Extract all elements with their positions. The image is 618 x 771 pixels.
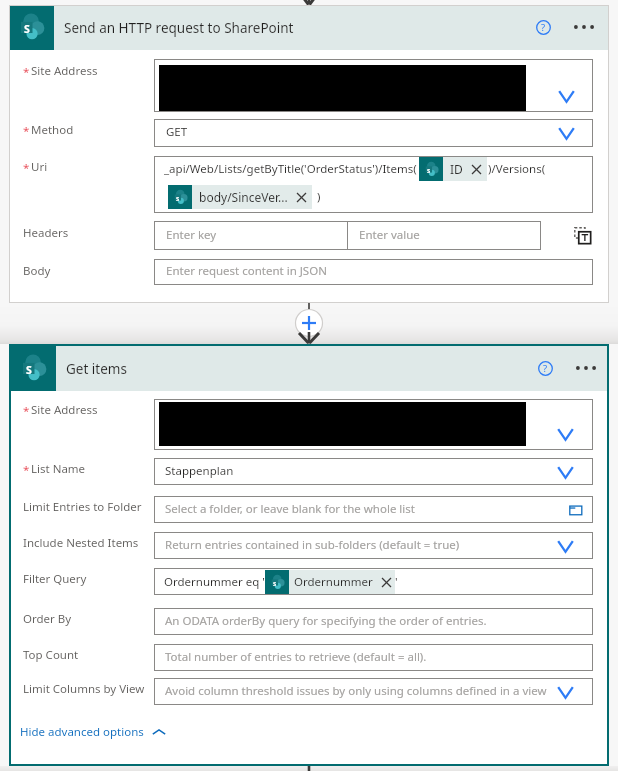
button[interactable]: Return entries contained in sub-folders … <box>154 532 593 559</box>
button[interactable]: GET <box>154 119 593 147</box>
staticText: ) <box>317 189 321 205</box>
button[interactable]: Total number of entries to retrieve (def… <box>154 644 593 671</box>
staticText: Filter Query <box>23 571 87 587</box>
staticText: S <box>24 22 30 36</box>
staticText: Enter value <box>359 227 420 243</box>
button[interactable]: Ordernummer eq ' <box>154 568 593 595</box>
button[interactable]: S <box>168 185 312 209</box>
staticText: Total number of entries to retrieve (def… <box>165 649 427 665</box>
staticText: Site Address <box>31 402 98 418</box>
staticText: * <box>23 160 30 176</box>
staticText: Return entries contained in sub-folders … <box>165 537 460 553</box>
button[interactable]: S <box>11 346 607 391</box>
button[interactable]: More commands <box>572 15 596 39</box>
staticText: List Name <box>31 461 86 477</box>
other: Browse folders <box>569 503 583 517</box>
staticText: _api/Web/Lists/getByTitle('OrderStatus')… <box>164 161 417 177</box>
button[interactable]: Help <box>534 357 556 379</box>
staticText: Uri <box>31 159 48 175</box>
staticText: ID <box>450 161 463 177</box>
staticText: Top Count <box>23 647 79 663</box>
staticText: Avoid column threshold issues by only us… <box>165 683 547 699</box>
staticText: Order By <box>23 611 72 627</box>
other: Remove Ordernummer <box>382 578 391 587</box>
staticText: Stappenplan <box>165 463 234 479</box>
staticText: Limit Entries to Folder <box>23 499 142 515</box>
staticText: Send an HTTP request to SharePoint <box>64 19 294 37</box>
staticText: * <box>23 64 30 80</box>
staticText: Limit Columns by View <box>23 681 145 697</box>
staticText: S <box>26 363 32 377</box>
staticText: An ODATA orderBy query for specifying th… <box>165 613 487 629</box>
button[interactable]: More commands <box>574 356 598 380</box>
button[interactable]: S <box>419 157 487 181</box>
staticText: * <box>23 403 30 419</box>
staticText: Ordernummer <box>294 574 373 590</box>
staticText: S <box>176 195 180 203</box>
button[interactable]: Stappenplan <box>154 458 593 485</box>
staticText: S <box>427 167 431 175</box>
other: Remove ID <box>472 165 481 174</box>
button[interactable]: Hide advanced options <box>20 724 166 740</box>
staticText: Include Nested Items <box>23 535 139 551</box>
button[interactable]: Select a folder, or leave blank for the … <box>154 496 593 523</box>
button[interactable]: Switch to text mode <box>572 225 592 245</box>
staticText: Headers <box>23 225 69 241</box>
staticText: Method <box>31 122 74 138</box>
button[interactable]: _api/Web/Lists/getByTitle('OrderStatus')… <box>154 156 593 213</box>
staticText: Site Address <box>31 63 98 79</box>
button[interactable]: S <box>265 570 395 594</box>
button[interactable]: An ODATA orderBy query for specifying th… <box>154 608 593 635</box>
staticText: Hide advanced options <box>20 724 144 740</box>
staticText: Ordernummer eq ' <box>164 574 265 590</box>
staticText: Enter key <box>166 227 217 243</box>
button[interactable]: Enter value <box>347 221 541 250</box>
button[interactable]: Avoid column threshold issues by only us… <box>154 678 593 705</box>
staticText: S <box>273 580 277 588</box>
staticText: )/Versions( <box>488 161 546 177</box>
staticText: ? <box>543 362 548 375</box>
staticText: Body <box>23 263 51 279</box>
staticText: ' <box>395 574 398 590</box>
staticText: ? <box>541 21 546 34</box>
button[interactable] <box>154 399 593 450</box>
staticText: * <box>23 462 30 478</box>
other: Remove body/SinceVer... <box>297 193 306 202</box>
staticText: body/SinceVer... <box>199 189 288 205</box>
button[interactable]: Enter key <box>154 221 348 250</box>
button[interactable]: S <box>9 5 609 50</box>
staticText: GET <box>166 124 188 140</box>
button[interactable]: Help <box>532 16 554 38</box>
staticText: Enter request content in JSON <box>166 263 327 279</box>
button[interactable] <box>154 59 593 112</box>
staticText: * <box>23 123 30 139</box>
staticText: Get items <box>66 360 127 378</box>
staticText: Select a folder, or leave blank for the … <box>165 501 415 517</box>
button[interactable]: Enter request content in JSON <box>154 259 593 285</box>
